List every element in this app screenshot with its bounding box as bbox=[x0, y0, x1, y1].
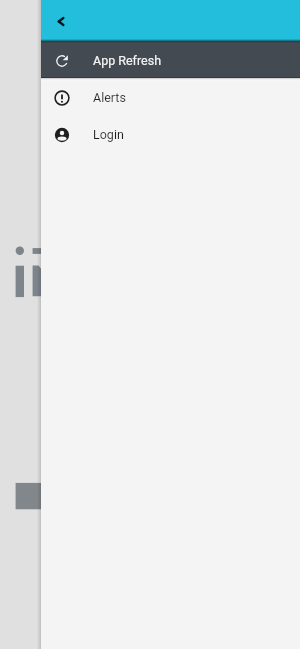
button[interactable]: Login bbox=[41, 115, 300, 152]
button[interactable]: App Refresh bbox=[41, 41, 300, 78]
staticText: Login bbox=[93, 127, 124, 142]
button[interactable]: Back bbox=[41, 1, 81, 41]
staticText: Alerts bbox=[93, 90, 126, 105]
staticText: App Refresh bbox=[93, 53, 162, 68]
button[interactable]: Alerts bbox=[41, 78, 300, 115]
